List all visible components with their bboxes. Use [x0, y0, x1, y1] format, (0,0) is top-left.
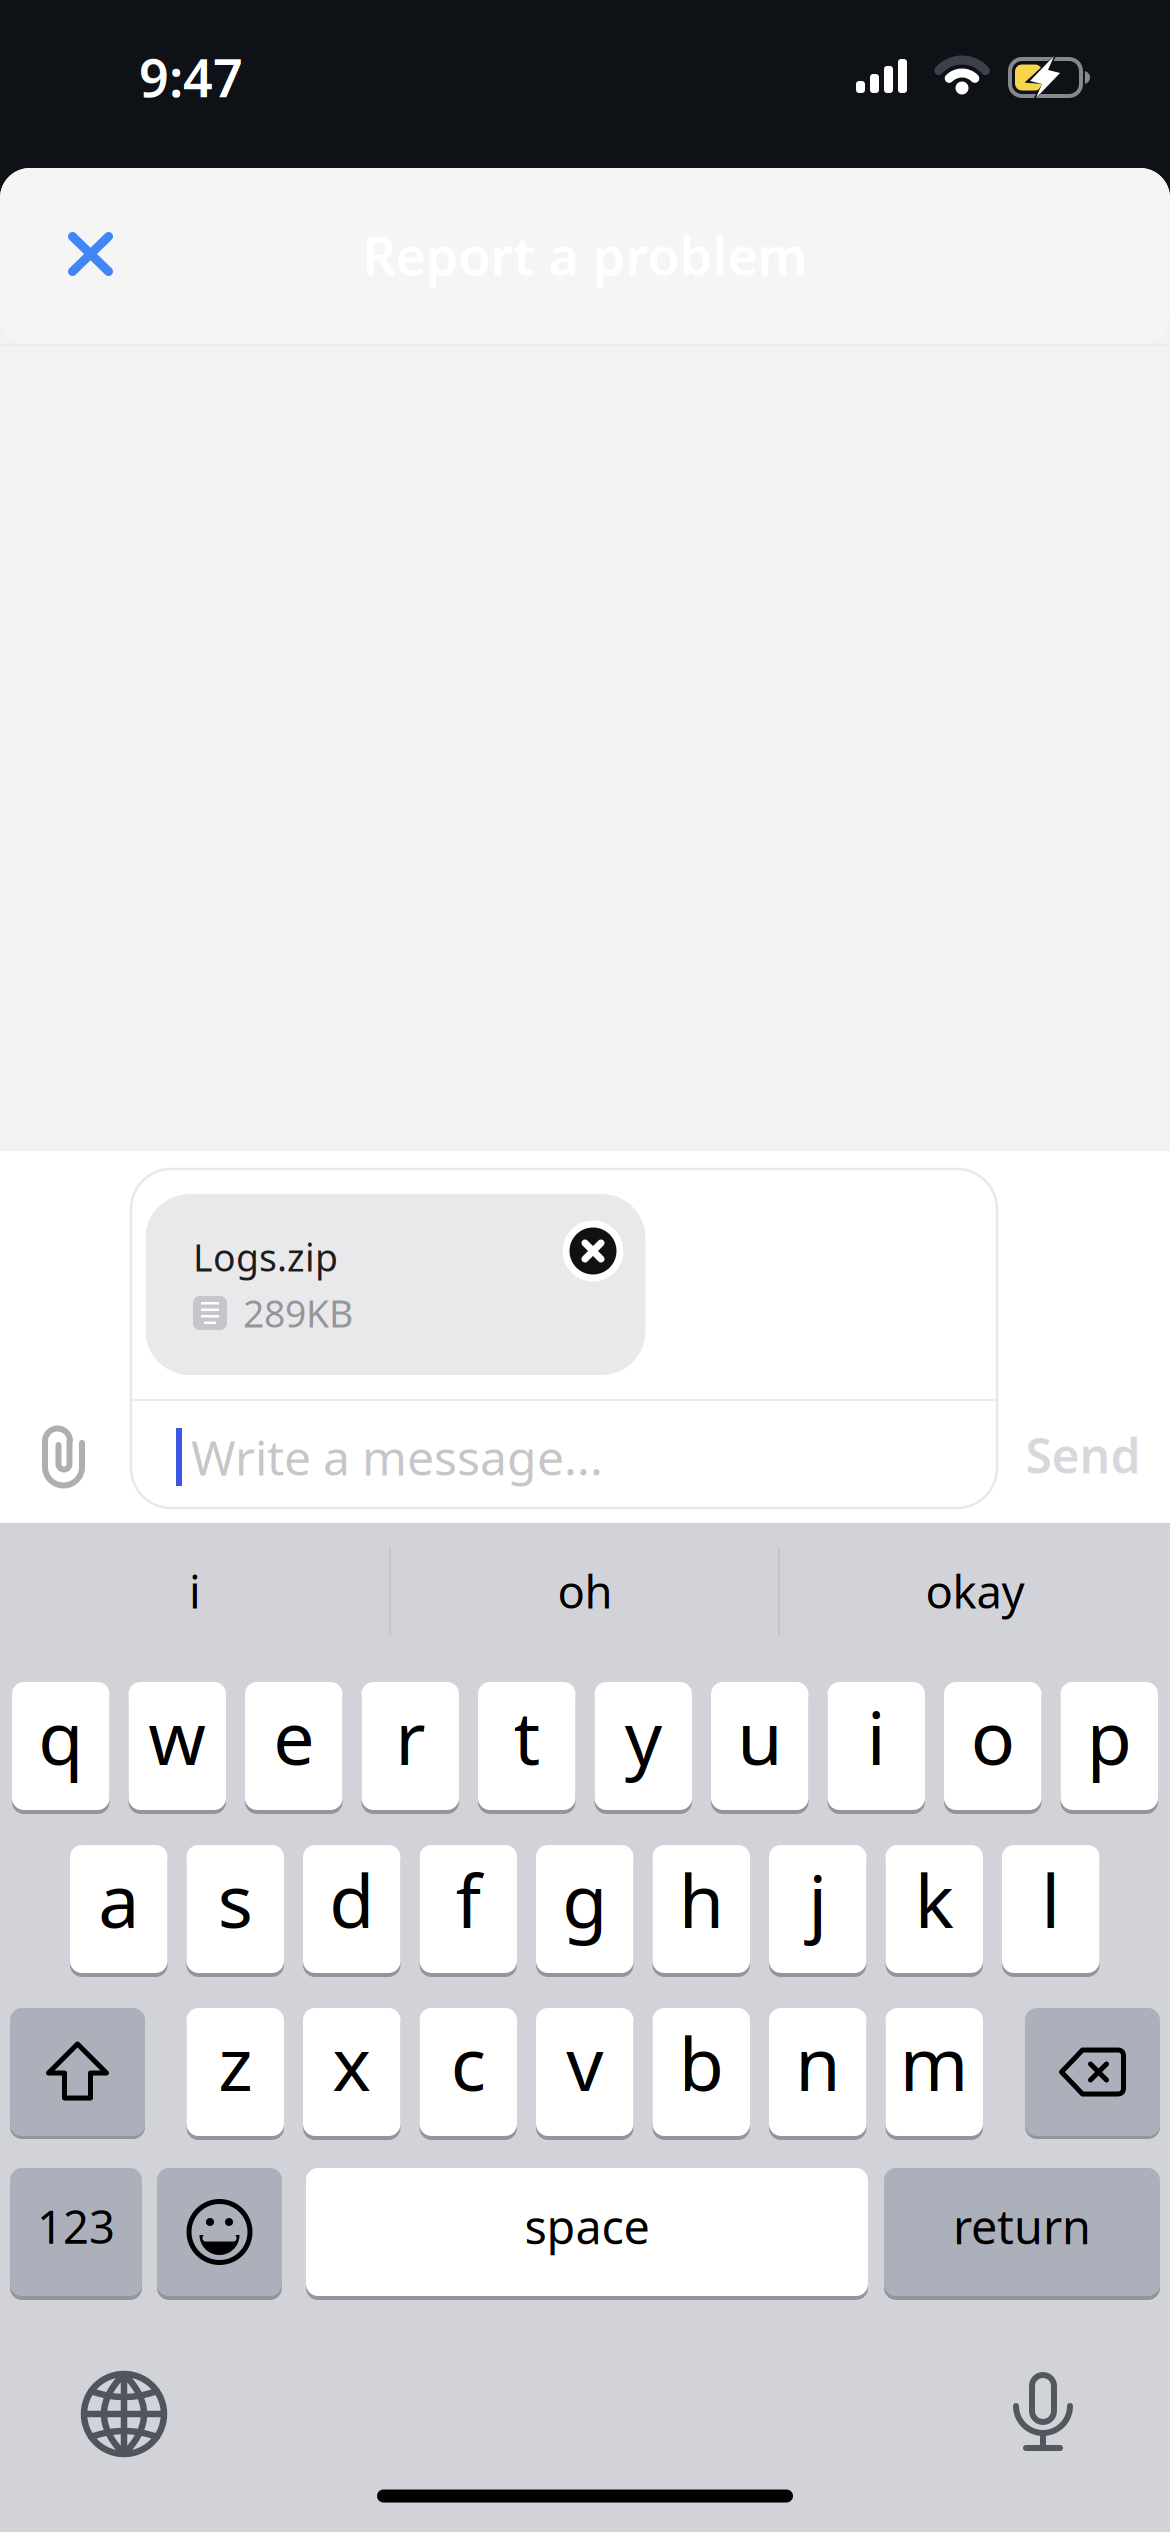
button[interactable]: z [186, 2006, 284, 2137]
button[interactable]: Remove attachment [562, 1220, 623, 1281]
staticText: q [38, 1688, 83, 1785]
button[interactable]: c [419, 2006, 517, 2137]
button[interactable]: p [1060, 1680, 1158, 1811]
staticText: c [451, 2014, 486, 2111]
button[interactable]: space [306, 2166, 868, 2297]
button[interactable]: q [12, 1680, 109, 1811]
button[interactable]: a [70, 1843, 167, 1974]
button[interactable]: Emoji [157, 2166, 282, 2298]
staticText: space [524, 2195, 649, 2257]
button[interactable]: Next keyboard [74, 2364, 174, 2464]
button[interactable]: f [419, 1843, 517, 1974]
staticText: v [566, 2014, 603, 2111]
button[interactable]: Attach file [24, 1418, 104, 1498]
staticText: n [795, 2014, 840, 2111]
button[interactable]: g [536, 1843, 633, 1974]
staticText: r [395, 1688, 425, 1785]
button[interactable]: m [885, 2006, 983, 2137]
button[interactable]: i [5, 1531, 385, 1651]
staticText: Report a problem [362, 220, 807, 290]
button[interactable]: k [885, 1843, 983, 1974]
staticText: e [273, 1688, 314, 1785]
button[interactable]: n [769, 2006, 866, 2137]
staticText: o [971, 1688, 1015, 1785]
staticText: m [900, 2014, 969, 2111]
staticText: p [1087, 1688, 1132, 1785]
button[interactable]: return [884, 2166, 1160, 2297]
button[interactable]: l [1002, 1843, 1099, 1974]
staticText: okay [925, 1561, 1024, 1621]
staticText: x [332, 2014, 371, 2111]
button[interactable]: y [594, 1680, 692, 1811]
staticText: l [1041, 1851, 1060, 1948]
button[interactable]: Shift [10, 2006, 145, 2137]
button[interactable]: b [652, 2006, 750, 2137]
button[interactable]: t [478, 1680, 575, 1811]
staticText: oh [557, 1561, 612, 1621]
staticText: i [867, 1688, 886, 1785]
staticText: return [953, 2195, 1091, 2257]
staticText: s [218, 1851, 253, 1948]
button[interactable]: 123 [10, 2166, 142, 2297]
button[interactable]: u [711, 1680, 808, 1811]
button[interactable]: x [303, 2006, 400, 2137]
staticText: 289KB [243, 1288, 353, 1338]
button[interactable]: j [769, 1843, 866, 1974]
staticText: b [679, 2014, 724, 2111]
staticText: i [189, 1561, 201, 1621]
staticText: d [329, 1851, 374, 1948]
staticText: a [98, 1851, 139, 1948]
staticText: g [562, 1851, 607, 1948]
button[interactable]: w [128, 1680, 226, 1811]
staticText: z [218, 2014, 252, 2111]
button[interactable]: Send [1025, 1423, 1140, 1487]
staticText: h [679, 1851, 724, 1948]
button[interactable]: h [652, 1843, 750, 1974]
button[interactable]: Delete [1025, 2006, 1160, 2137]
staticText: Write a message... [191, 1425, 603, 1489]
staticText: u [737, 1688, 782, 1785]
button[interactable]: oh [395, 1531, 775, 1651]
staticText: Logs.zip [193, 1232, 338, 1282]
button[interactable]: d [303, 1843, 400, 1974]
button[interactable]: e [245, 1680, 342, 1811]
staticText: j [808, 1851, 827, 1948]
button[interactable]: okay [785, 1531, 1165, 1651]
staticText: y [625, 1688, 662, 1785]
staticText: f [456, 1851, 481, 1948]
button[interactable]: Dictate [993, 2364, 1093, 2464]
button[interactable]: Close [46, 210, 134, 298]
button[interactable]: v [536, 2006, 633, 2137]
staticText: 123 [37, 2196, 115, 2256]
staticText: 9:47 [139, 42, 243, 112]
staticText: t [514, 1688, 540, 1785]
staticText: k [915, 1851, 954, 1948]
button[interactable]: r [361, 1680, 459, 1811]
staticText: Send [1025, 1423, 1140, 1487]
button[interactable]: i [827, 1680, 925, 1811]
staticText: w [148, 1688, 206, 1785]
button[interactable]: s [186, 1843, 284, 1974]
button[interactable]: o [944, 1680, 1041, 1811]
